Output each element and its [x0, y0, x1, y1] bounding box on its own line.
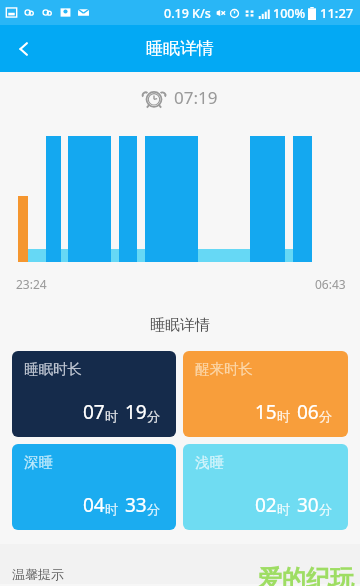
staticText: 06	[297, 399, 319, 425]
staticText: 醒来时长	[195, 360, 253, 378]
staticText: 分	[319, 501, 332, 517]
staticText: 睡眠详情	[146, 38, 214, 59]
staticText: 23:24	[16, 276, 47, 292]
staticText: 04	[83, 492, 105, 518]
button[interactable]: 睡眠时长	[12, 351, 176, 437]
button[interactable]: Back	[0, 25, 47, 72]
staticText: 分	[147, 408, 160, 424]
button[interactable]: 醒来时长	[183, 351, 348, 437]
staticText: 睡眠时长	[24, 360, 82, 378]
staticText: 06:43	[315, 276, 346, 292]
staticText: 深睡	[24, 453, 53, 471]
staticText: 温馨提示	[12, 566, 64, 582]
button[interactable]: 深睡	[12, 444, 176, 530]
staticText: 02	[255, 492, 277, 518]
staticText: 15	[255, 399, 277, 425]
staticText: 19	[125, 399, 147, 425]
staticText: 11:27	[320, 4, 354, 22]
staticText: 睡眠详情	[0, 316, 360, 335]
staticText: 0.19 K/s	[164, 5, 211, 22]
staticText: 分	[319, 408, 332, 424]
staticText: 浅睡	[195, 453, 224, 471]
staticText: 07	[83, 399, 105, 425]
staticText: 100%	[273, 5, 306, 22]
staticText: 时	[277, 408, 290, 424]
staticText: 时	[105, 408, 118, 424]
staticText: 爱的纪玩	[258, 564, 354, 586]
staticText: 07:19	[174, 86, 218, 109]
button[interactable]: 浅睡	[183, 444, 348, 530]
staticText: 时	[105, 501, 118, 517]
staticText: 分	[147, 501, 160, 517]
staticText: 时	[277, 501, 290, 517]
staticText: 30	[297, 492, 319, 518]
staticText: 33	[125, 492, 147, 518]
